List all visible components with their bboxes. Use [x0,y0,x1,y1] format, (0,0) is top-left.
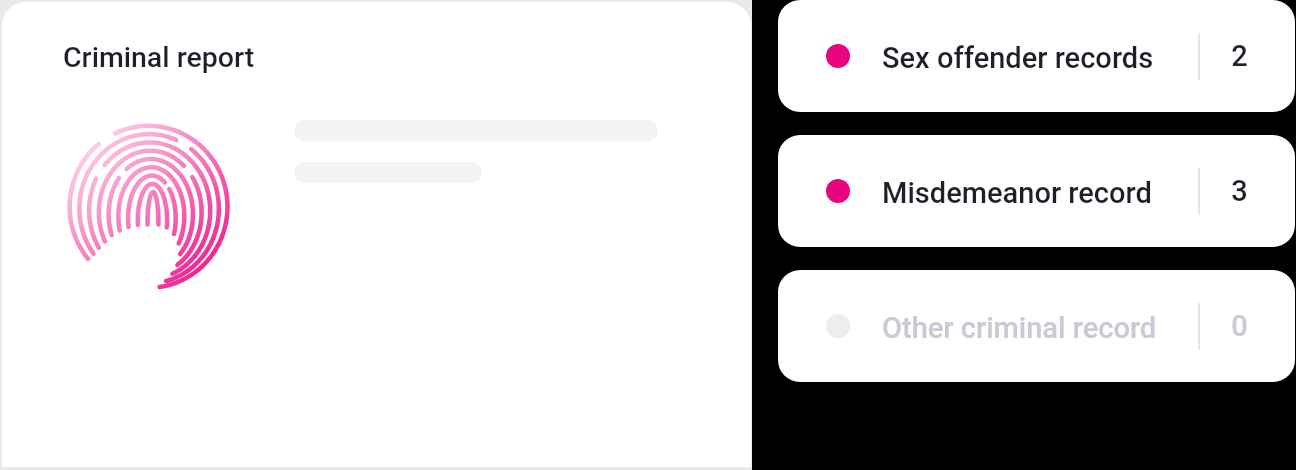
button[interactable]: Criminal report [2,2,751,467]
button[interactable]: Sex offender records [778,0,1295,112]
button[interactable]: Misdemeanor record [778,135,1295,247]
staticText: Criminal report [63,41,255,74]
staticText: Sex offender records [882,41,1154,75]
staticText: 0 [1231,309,1248,343]
staticText: Misdemeanor record [882,176,1152,210]
button[interactable]: Other criminal record [778,270,1295,382]
staticText: Other criminal record [882,311,1157,345]
staticText: 2 [1231,39,1248,73]
staticText: 3 [1231,174,1248,208]
